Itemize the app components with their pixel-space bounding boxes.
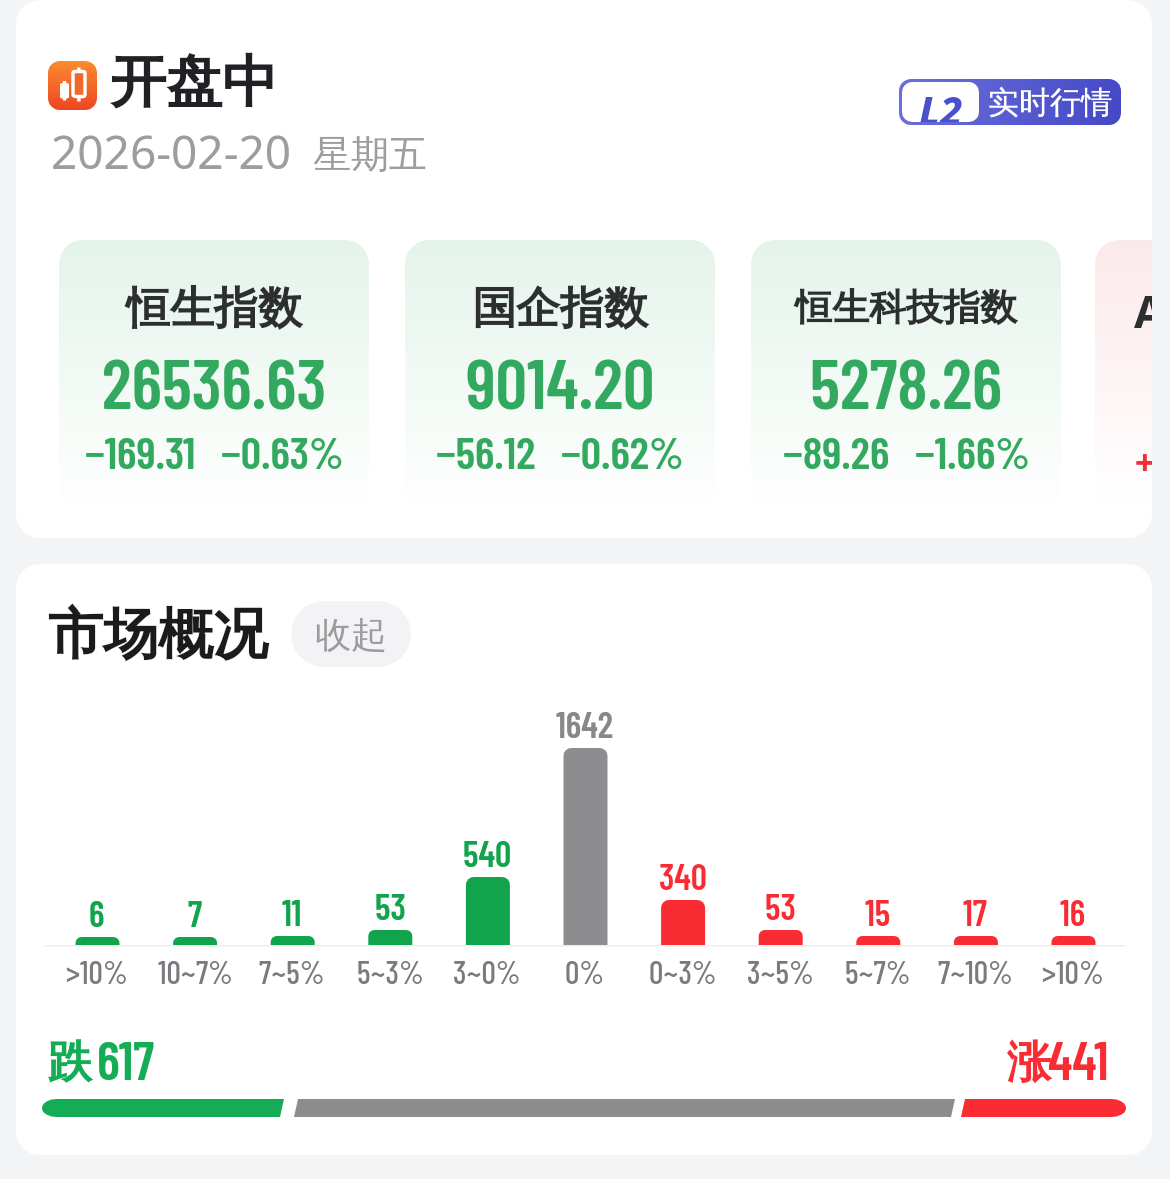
staticText: 10~7% xyxy=(158,952,233,990)
staticText: 11 xyxy=(282,890,302,933)
button[interactable]: 恒生指数 xyxy=(59,240,369,508)
staticText: 1642 xyxy=(556,702,614,745)
staticText: 0% xyxy=(565,952,605,990)
staticText: 5~7% xyxy=(845,952,911,990)
staticText: −1.66% xyxy=(915,424,1030,478)
staticText: +1.08% xyxy=(1135,432,1170,486)
staticText: 26536.63 xyxy=(102,339,327,423)
staticText: 340 xyxy=(659,854,708,897)
staticText: 53 xyxy=(375,884,406,927)
staticText: 3~0% xyxy=(453,952,521,990)
staticText: L2 xyxy=(919,82,963,122)
staticText: 7 xyxy=(188,891,203,934)
button[interactable]: 收起 xyxy=(291,601,411,667)
staticText: 0~3% xyxy=(649,952,717,990)
button[interactable]: 恒生科技指数 xyxy=(751,240,1061,508)
staticText: 7~5% xyxy=(259,952,325,990)
staticText: −89.26 xyxy=(783,424,890,478)
staticText: 跌 xyxy=(48,1035,92,1090)
staticText: 实时行情 xyxy=(988,83,1112,122)
staticText: −0.62% xyxy=(561,424,684,478)
staticText: 恒生指数 xyxy=(126,281,302,336)
staticText: 开盘中 xyxy=(110,47,278,118)
staticText: 7~10% xyxy=(938,952,1013,990)
button[interactable] xyxy=(48,61,97,110)
staticText: −169.31 xyxy=(85,424,196,478)
staticText: 收起 xyxy=(315,612,387,657)
staticText: >10% xyxy=(66,952,128,990)
staticText: 2026-02-20 xyxy=(51,120,292,183)
staticText: 恒生科技指数 xyxy=(795,284,1017,331)
staticText: >10% xyxy=(1042,952,1104,990)
staticText: −0.63% xyxy=(221,424,344,478)
staticText: 16 xyxy=(1060,890,1086,933)
staticText: −56.12 xyxy=(436,424,536,478)
button[interactable]: 国企指数 xyxy=(405,240,715,508)
staticText: 441 xyxy=(1048,1027,1109,1091)
staticText: 涨 xyxy=(1007,1035,1051,1090)
staticText: 市场概况 xyxy=(48,600,268,669)
staticText: 5278.26 xyxy=(810,339,1003,423)
staticText: 3~5% xyxy=(747,952,814,990)
staticText: 6 xyxy=(89,891,105,934)
staticText: 国企指数 xyxy=(472,281,648,336)
staticText: 5~3% xyxy=(357,952,424,990)
button[interactable]: AH股溢价 xyxy=(1095,240,1170,508)
staticText: 9014.20 xyxy=(466,339,655,423)
staticText: 星期五 xyxy=(313,130,427,178)
staticText: AH股溢价 xyxy=(1134,281,1170,341)
staticText: 617 xyxy=(97,1027,155,1091)
staticText: 53 xyxy=(765,884,796,927)
button[interactable]: L2 xyxy=(899,79,1121,125)
staticText: 540 xyxy=(463,831,512,874)
staticText: 15 xyxy=(865,890,891,933)
staticText: 17 xyxy=(963,890,987,933)
